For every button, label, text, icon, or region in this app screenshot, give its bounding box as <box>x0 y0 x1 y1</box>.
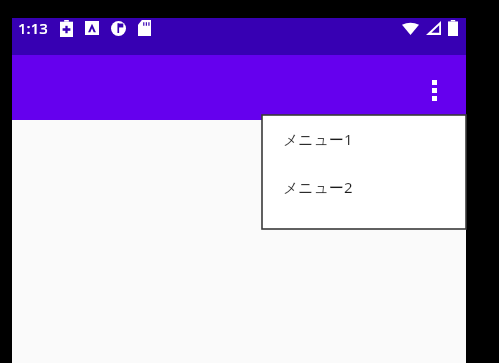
button[interactable]: More options <box>414 70 454 110</box>
button[interactable]: メニュー2 <box>262 163 466 211</box>
staticText: 1:13 <box>18 18 48 38</box>
staticText: メニュー2 <box>283 177 353 197</box>
staticText: メニュー1 <box>283 129 353 149</box>
button[interactable]: メニュー1 <box>262 115 466 163</box>
